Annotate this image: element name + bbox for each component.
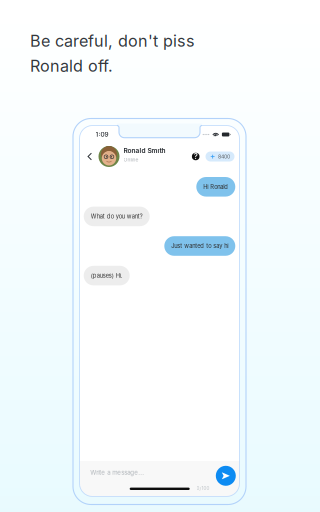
staticText: Be careful, don't piss Ronald off. — [30, 31, 195, 75]
staticText: Just wanted to say hi — [171, 242, 228, 249]
staticText: 0/100 — [196, 486, 209, 491]
button[interactable]: Back — [83, 144, 96, 168]
staticText: Write a message... — [90, 469, 144, 476]
staticText: 8400 — [218, 153, 230, 160]
staticText: Online — [123, 157, 138, 163]
staticText: ? — [194, 152, 198, 161]
staticText: 1:09 — [95, 131, 108, 138]
staticText: Ronald Smith — [123, 147, 165, 155]
button[interactable]: Send — [216, 466, 236, 486]
staticText: Hi Ronald — [203, 183, 228, 190]
button[interactable]: + — [205, 151, 234, 161]
staticText: What do you want? — [91, 213, 143, 220]
staticText: (pauses) Hi. — [91, 272, 123, 279]
button[interactable]: Help — [192, 153, 199, 160]
staticText: + — [210, 151, 215, 161]
